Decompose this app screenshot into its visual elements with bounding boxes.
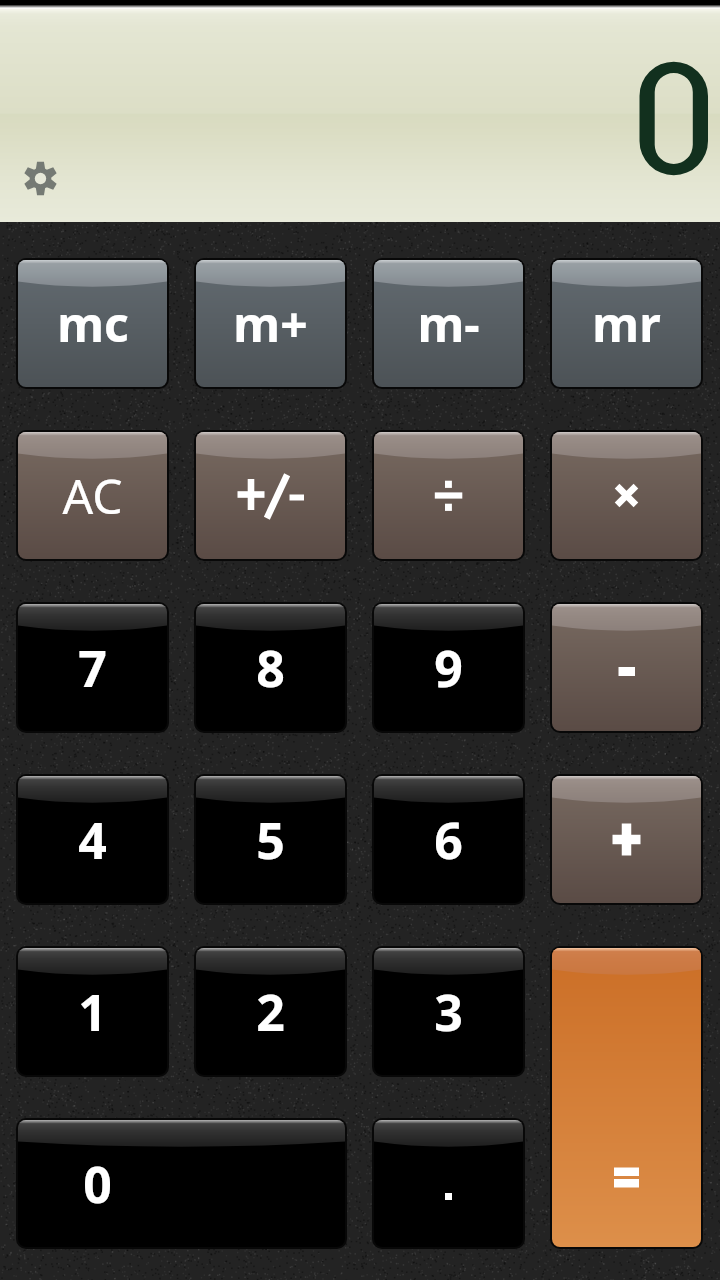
staticText: 8 xyxy=(256,634,285,702)
staticText: AC xyxy=(62,463,123,528)
button[interactable]: mr xyxy=(550,258,703,389)
staticText: mr xyxy=(592,291,661,356)
button[interactable]: Multiply xyxy=(550,430,703,561)
button[interactable]: AC xyxy=(16,430,169,561)
staticText: m+ xyxy=(233,291,308,356)
button[interactable]: Plus xyxy=(550,774,703,905)
button[interactable]: m- xyxy=(372,258,525,389)
button[interactable]: mc xyxy=(16,258,169,389)
button[interactable]: m+ xyxy=(194,258,347,389)
staticText: 3 xyxy=(434,978,463,1046)
button[interactable]: Settings xyxy=(24,162,57,195)
staticText: 4 xyxy=(78,806,107,874)
button[interactable]: 0 xyxy=(16,1118,347,1249)
button[interactable]: Divide xyxy=(372,430,525,561)
staticText: 9 xyxy=(434,634,463,702)
button[interactable]: Equals xyxy=(550,946,703,1249)
button[interactable]: Minus xyxy=(550,602,703,733)
button[interactable]: 9 xyxy=(372,602,525,733)
button[interactable]: 7 xyxy=(16,602,169,733)
staticText: 5 xyxy=(256,806,285,874)
button[interactable]: 6 xyxy=(372,774,525,905)
staticText: 7 xyxy=(78,634,107,702)
button[interactable]: Plus minus xyxy=(194,430,347,561)
staticText: mc xyxy=(57,291,129,356)
button[interactable]: 5 xyxy=(194,774,347,905)
button[interactable]: Decimal point xyxy=(372,1118,525,1249)
button[interactable]: 8 xyxy=(194,602,347,733)
button[interactable]: 1 xyxy=(16,946,169,1077)
staticText: 6 xyxy=(434,806,463,874)
staticText: 0 xyxy=(83,1150,112,1218)
button[interactable]: 2 xyxy=(194,946,347,1077)
button[interactable]: 4 xyxy=(16,774,169,905)
button[interactable]: 3 xyxy=(372,946,525,1077)
staticText: 2 xyxy=(256,978,285,1046)
staticText: m- xyxy=(417,291,480,356)
staticText: 1 xyxy=(78,978,107,1046)
